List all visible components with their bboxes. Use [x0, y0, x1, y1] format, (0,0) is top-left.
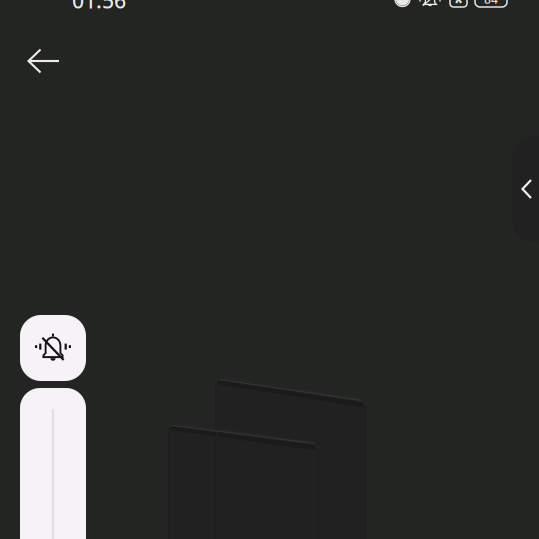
staticText: 84 — [484, 0, 498, 7]
button[interactable]: Open side panel — [512, 136, 539, 242]
button[interactable]: Mute ringtone — [20, 315, 86, 381]
button[interactable]: Back — [16, 37, 72, 85]
staticText: 01:56 — [72, 0, 126, 14]
staticText: * — [453, 0, 463, 14]
